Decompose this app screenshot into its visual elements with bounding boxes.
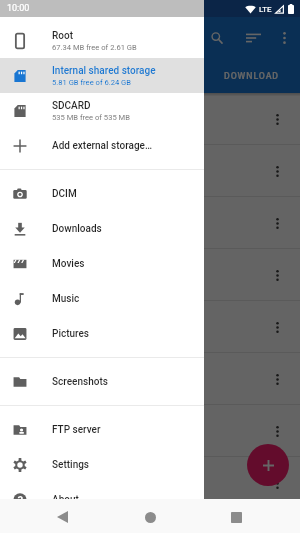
button[interactable]: More options — [276, 17, 292, 58]
staticText: 535 MB free of 535 MB — [52, 113, 130, 122]
button[interactable]: Sort — [244, 17, 262, 58]
staticText: 5.81 GB free of 6.24 GB — [52, 78, 132, 87]
staticText: Pictures — [52, 328, 90, 340]
button[interactable]: Music — [0, 281, 204, 316]
button[interactable]: DCIM — [0, 176, 204, 211]
button[interactable]: Settings — [0, 447, 204, 482]
button[interactable]: Item options — [268, 258, 286, 292]
button[interactable]: Item options — [268, 310, 286, 344]
button[interactable]: Screenshots — [0, 364, 204, 399]
button[interactable]: Item options — [268, 206, 286, 240]
button[interactable]: Item options — [0, 93, 300, 145]
button[interactable]: Item options — [268, 414, 286, 448]
staticText: Root — [52, 30, 73, 42]
staticText: Music — [52, 293, 80, 305]
staticText: Downloads — [52, 223, 102, 235]
button[interactable]: DOWNLOAD — [204, 58, 300, 93]
button[interactable]: SDCARD — [0, 93, 204, 128]
staticText: Internal shared storage — [52, 65, 156, 77]
staticText: SDCARD — [52, 100, 91, 112]
button[interactable]: Item options — [268, 102, 286, 136]
button[interactable]: Item options — [268, 362, 286, 396]
button[interactable]: Back — [46, 500, 78, 533]
button[interactable]: Downloads — [0, 211, 204, 246]
button[interactable]: Add — [247, 444, 289, 486]
button[interactable]: Recents — [220, 500, 252, 533]
staticText: FTP server — [52, 424, 101, 436]
staticText: 10:00 — [7, 3, 30, 14]
staticText: LTE — [259, 5, 272, 14]
button[interactable]: Item options — [268, 154, 286, 188]
staticText: Add external storage… — [52, 140, 153, 152]
staticText: About — [52, 494, 79, 506]
button[interactable]: Pictures — [0, 316, 204, 351]
button[interactable]: Search — [208, 17, 226, 58]
button[interactable]: Internal shared storage — [0, 58, 204, 93]
staticText: DCIM — [52, 188, 77, 200]
staticText: 67.34 MB free of 2.61 GB — [52, 43, 137, 52]
button[interactable]: Item options — [268, 466, 286, 500]
button[interactable]: Home — [134, 500, 166, 533]
staticText: Movies — [52, 258, 85, 270]
button[interactable]: Item options — [0, 457, 300, 509]
staticText: DOWNLOAD — [224, 71, 280, 81]
staticText: Screenshots — [52, 376, 108, 388]
button[interactable]: Movies — [0, 246, 204, 281]
button[interactable]: Item options — [0, 353, 300, 405]
button[interactable]: Root — [0, 23, 204, 58]
button[interactable]: Item options — [0, 509, 300, 533]
button[interactable]: Item options — [0, 249, 300, 301]
button[interactable]: Item options — [0, 301, 300, 353]
button[interactable]: Add external storage… — [0, 128, 204, 163]
button[interactable]: Item options — [0, 145, 300, 197]
button[interactable]: Item options — [0, 405, 300, 457]
staticText: Settings — [52, 459, 90, 471]
button[interactable]: Item options — [0, 197, 300, 249]
button[interactable]: FTP server — [0, 412, 204, 447]
button[interactable]: About — [0, 482, 204, 517]
